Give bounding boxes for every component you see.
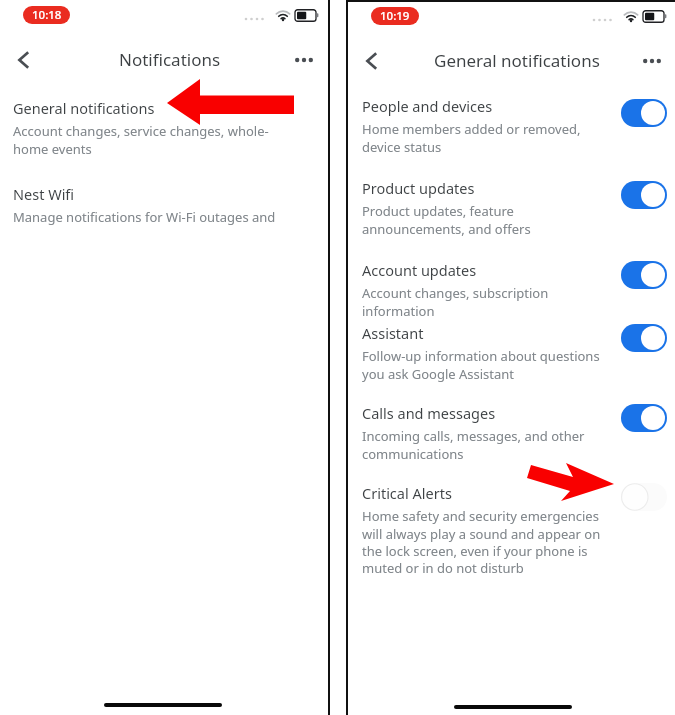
- staticText: Follow-up information about questions yo…: [362, 347, 610, 383]
- staticText: General notifications: [434, 49, 600, 72]
- staticText: Account changes, service changes, whole-…: [13, 122, 298, 158]
- staticText: Incoming calls, messages, and other comm…: [362, 427, 610, 463]
- staticText: Account changes, subscription informatio…: [362, 284, 610, 320]
- staticText: Nest Wifi: [13, 184, 75, 204]
- button[interactable]: Back: [8, 45, 38, 75]
- staticText: Calls and messages: [362, 403, 496, 423]
- staticText: General notifications: [13, 98, 155, 118]
- staticText: Manage notifications for Wi-Fi outages a…: [13, 208, 298, 230]
- button[interactable]: Nest Wifi: [0, 178, 329, 224]
- staticText: Notifications: [119, 48, 221, 71]
- button[interactable]: Toggle off: [621, 483, 667, 511]
- button[interactable]: Toggle on: [621, 261, 667, 289]
- staticText: 10:18: [32, 7, 62, 23]
- staticText: 10:19: [380, 8, 410, 24]
- staticText: Product updates, feature announcements, …: [362, 202, 610, 238]
- button[interactable]: General notifications: [0, 92, 329, 156]
- button[interactable]: Toggle on: [621, 181, 667, 209]
- staticText: Home members added or removed, device st…: [362, 120, 610, 156]
- staticText: Assistant: [362, 323, 424, 343]
- staticText: Product updates: [362, 178, 475, 198]
- button[interactable]: Back: [356, 46, 386, 76]
- staticText: People and devices: [362, 96, 493, 116]
- staticText: Critical Alerts: [362, 483, 452, 503]
- button[interactable]: More options: [289, 45, 319, 75]
- button[interactable]: Toggle on: [621, 324, 667, 352]
- button[interactable]: Toggle on: [621, 404, 667, 432]
- button[interactable]: Toggle on: [621, 99, 667, 127]
- button[interactable]: More options: [637, 46, 667, 76]
- staticText: Account updates: [362, 260, 477, 280]
- staticText: Home safety and security emergencies wil…: [362, 507, 610, 577]
